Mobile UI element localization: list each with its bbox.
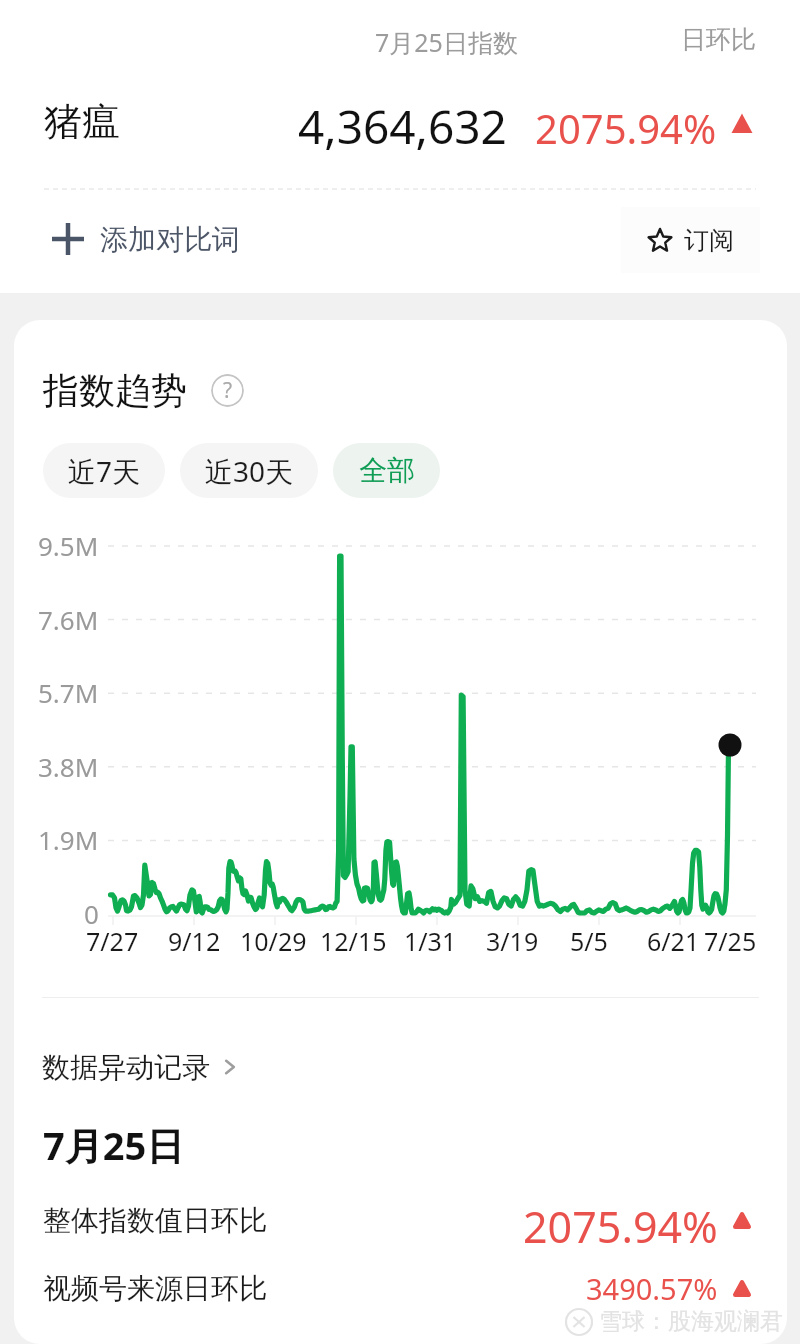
button[interactable]: 视频号来源日环比 — [43, 1265, 751, 1311]
staticText: 10/29 — [240, 924, 307, 958]
staticText: 9/12 — [168, 924, 221, 958]
staticText: 3.8M — [38, 749, 99, 784]
button[interactable]: 近7天 — [43, 443, 165, 498]
button[interactable]: 数据异动记录 — [42, 1042, 242, 1092]
button[interactable]: 全部 — [333, 443, 440, 498]
button[interactable]: 整体指数值日环比 — [43, 1197, 751, 1243]
staticText: 3490.57% — [586, 1269, 718, 1308]
staticText: 7/25 — [704, 924, 757, 958]
staticText: 3/19 — [486, 924, 539, 958]
staticText: 全部 — [359, 453, 415, 488]
button[interactable]: Help — [211, 374, 244, 407]
button[interactable]: 指数趋势 — [43, 368, 244, 413]
staticText: 指数趋势 — [43, 368, 187, 413]
staticText: 7月25日指数 — [375, 25, 518, 59]
button[interactable]: 近30天 — [180, 443, 318, 498]
staticText: 0 — [84, 896, 99, 931]
staticText: 5.7M — [38, 675, 99, 710]
staticText: 7.6M — [38, 602, 99, 637]
staticText: 数据异动记录 — [42, 1050, 210, 1085]
staticText: 视频号来源日环比 — [43, 1271, 267, 1306]
button[interactable]: 添加对比词 — [44, 206, 248, 272]
staticText: 猪瘟 — [44, 98, 120, 146]
staticText: 9.5M — [38, 528, 99, 563]
staticText: 近7天 — [68, 452, 141, 490]
staticText: 1/31 — [404, 924, 457, 958]
staticText: 雪球：股海观澜君 — [599, 1307, 783, 1336]
staticText: 2075.94% — [535, 101, 717, 155]
staticText: 近30天 — [205, 452, 294, 490]
staticText: 6/21 — [647, 924, 700, 958]
staticText: ? — [223, 376, 233, 405]
staticText: 添加对比词 — [100, 222, 240, 257]
staticText: 5/5 — [570, 924, 608, 958]
staticText: 订阅 — [684, 225, 734, 256]
staticText: 7月25日 — [43, 1119, 185, 1171]
staticText: 4,364,632 — [298, 95, 507, 158]
staticText: 2075.94% — [523, 1197, 718, 1243]
staticText: 整体指数值日环比 — [43, 1203, 267, 1238]
staticText: 12/15 — [320, 924, 387, 958]
staticText: 1.9M — [38, 822, 99, 857]
staticText: 7/27 — [86, 924, 139, 958]
button[interactable]: 订阅 — [621, 207, 760, 273]
staticText: 日环比 — [681, 24, 756, 55]
